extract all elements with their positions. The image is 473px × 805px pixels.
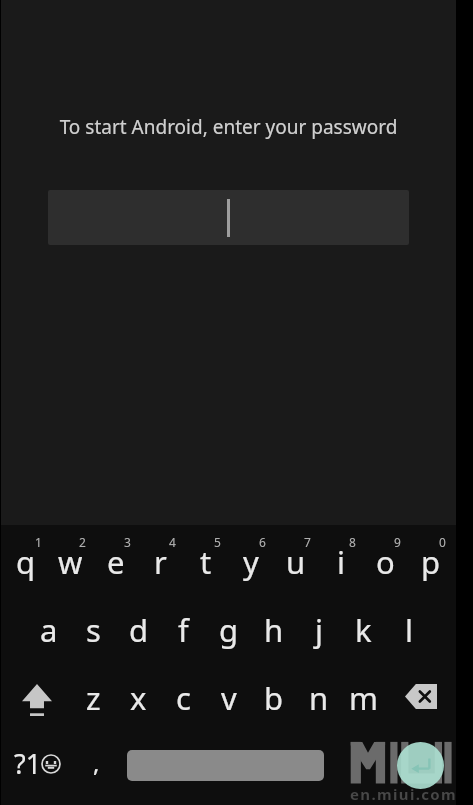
staticText: , (93, 746, 100, 779)
button[interactable]: w (48, 528, 93, 596)
staticText: l (405, 609, 413, 651)
staticText: j (315, 609, 323, 651)
staticText: o (376, 541, 395, 583)
button[interactable]: Password field (48, 190, 409, 245)
staticText: 5 (214, 534, 221, 550)
staticText: 4 (169, 534, 176, 550)
staticText: x (130, 677, 147, 719)
staticText: q (16, 541, 36, 583)
button[interactable]: y (228, 528, 273, 596)
staticText: p (421, 541, 441, 583)
button[interactable]: v (206, 664, 251, 732)
staticText: 3 (124, 534, 131, 550)
button[interactable]: ?1 (4, 732, 72, 800)
button[interactable]: a (26, 596, 71, 664)
button[interactable]: m (341, 664, 386, 732)
staticText: m (349, 677, 378, 719)
staticText: a (40, 609, 58, 651)
button[interactable]: Space (127, 750, 324, 781)
button[interactable]: s (71, 596, 116, 664)
staticText: v (221, 677, 237, 719)
button[interactable]: u (273, 528, 318, 596)
staticText: f (178, 609, 189, 651)
button[interactable]: k (341, 596, 386, 664)
button[interactable]: h (251, 596, 296, 664)
staticText: y (243, 541, 259, 583)
button[interactable]: j (296, 596, 341, 664)
button[interactable]: g (206, 596, 251, 664)
staticText: k (355, 609, 372, 651)
staticText: ?1 (14, 745, 42, 782)
staticText: en.miui.com (350, 784, 458, 804)
button[interactable]: l (386, 596, 431, 664)
staticText: n (309, 677, 329, 719)
staticText: 2 (79, 534, 86, 550)
button[interactable]: b (251, 664, 296, 732)
button[interactable]: p (408, 528, 453, 596)
staticText: 1 (35, 534, 42, 550)
staticText: d (129, 609, 149, 651)
staticText: c (176, 677, 191, 719)
button[interactable]: q (4, 528, 48, 596)
button[interactable]: c (161, 664, 206, 732)
button[interactable]: n (296, 664, 341, 732)
button[interactable]: e (93, 528, 138, 596)
button[interactable]: o (363, 528, 408, 596)
staticText: z (86, 677, 101, 719)
button[interactable]: Backspace (386, 664, 453, 732)
button[interactable]: i (318, 528, 363, 596)
button[interactable]: f (161, 596, 206, 664)
button[interactable]: , (72, 732, 118, 800)
staticText: s (86, 609, 101, 651)
button[interactable]: t (183, 528, 228, 596)
staticText: w (58, 541, 83, 583)
staticText: e (107, 541, 125, 583)
staticText: r (154, 541, 167, 583)
staticText: 0 (439, 534, 446, 550)
button[interactable]: x (116, 664, 161, 732)
staticText: b (264, 677, 284, 719)
staticText: 9 (394, 534, 401, 550)
button[interactable]: z (71, 664, 116, 732)
staticText: t (200, 541, 212, 583)
staticText: h (264, 609, 284, 651)
staticText: u (286, 541, 306, 583)
staticText: To start Android, enter your password (1, 114, 456, 140)
staticText: 7 (304, 534, 311, 550)
button[interactable]: r (138, 528, 183, 596)
staticText: g (219, 609, 239, 651)
button[interactable]: Shift (4, 664, 71, 732)
staticText: 8 (349, 534, 356, 550)
button[interactable]: Enter (397, 742, 444, 789)
button[interactable]: d (116, 596, 161, 664)
staticText: 6 (259, 534, 266, 550)
staticText: i (337, 541, 345, 583)
